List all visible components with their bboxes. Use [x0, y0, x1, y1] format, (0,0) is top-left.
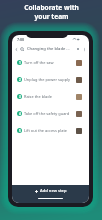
- staticText: Raise the blade: [24, 94, 52, 99]
- staticText: Unplug the power supply: [24, 77, 71, 82]
- staticText: Lift out the access plate: [24, 128, 68, 133]
- staticText: Collaborate with: [24, 3, 79, 12]
- staticText: 3: [19, 95, 21, 99]
- button[interactable]: 1: [12, 54, 89, 71]
- staticText: Add new step: [40, 188, 67, 194]
- staticText: your team: [34, 12, 69, 21]
- button[interactable]: 4: [12, 105, 89, 122]
- staticText: 5: [19, 129, 21, 133]
- staticText: Turn off the saw: [24, 60, 54, 65]
- button[interactable]: More options: [81, 46, 87, 52]
- button[interactable]: 5: [12, 122, 89, 139]
- button[interactable]: Task status: [19, 46, 25, 52]
- button[interactable]: 3: [12, 88, 89, 105]
- staticText: 2: [19, 78, 21, 82]
- staticText: 4: [19, 112, 21, 116]
- button[interactable]: Back: [13, 46, 19, 52]
- staticText: Take off the safety guard: [24, 111, 70, 116]
- staticText: Changing the blade ...: [27, 46, 70, 52]
- button[interactable]: Add: [75, 46, 81, 52]
- staticText: 1: [19, 61, 21, 65]
- button[interactable]: Add new step: [12, 185, 89, 203]
- staticText: 7:00: [17, 37, 25, 42]
- button[interactable]: 2: [12, 71, 89, 88]
